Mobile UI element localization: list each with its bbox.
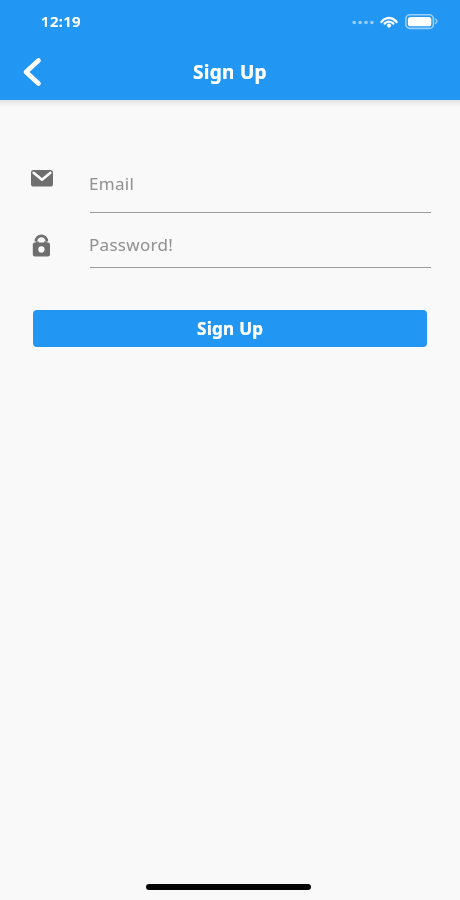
staticText: Email (89, 172, 135, 195)
staticText: Password! (89, 233, 174, 256)
staticText: Sign Up (197, 317, 264, 340)
staticText: 12:19 (41, 11, 81, 31)
staticText: Sign Up (193, 59, 267, 85)
